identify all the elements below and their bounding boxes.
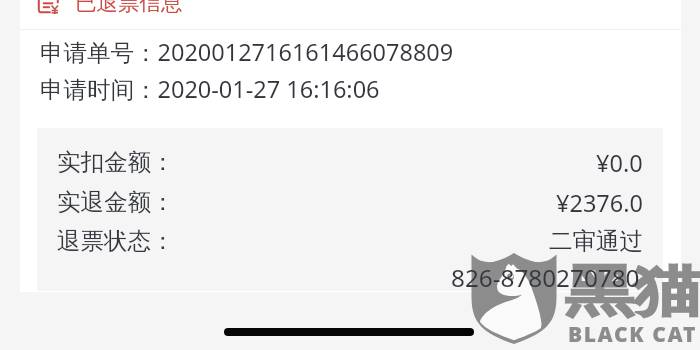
staticText: 申请单号：2020012716161466078809 <box>40 36 454 68</box>
staticText: BLACK CAT <box>568 320 697 349</box>
staticText: 退票状态： <box>57 226 175 256</box>
staticText: 二审通过 <box>549 226 643 256</box>
button[interactable]: 已退票信息 <box>34 0 184 16</box>
staticText: 826-8780270780 <box>451 261 640 291</box>
staticText: 实退金额： <box>57 187 175 217</box>
staticText: 黑猫 <box>565 257 700 326</box>
staticText: 实扣金额： <box>57 147 175 177</box>
staticText: ¥0.0 <box>596 147 643 177</box>
staticText: 已退票信息 <box>75 0 183 16</box>
staticText: 申请时间：2020-01-27 16:16:06 <box>40 73 380 105</box>
staticText: ¥2376.0 <box>556 187 643 217</box>
